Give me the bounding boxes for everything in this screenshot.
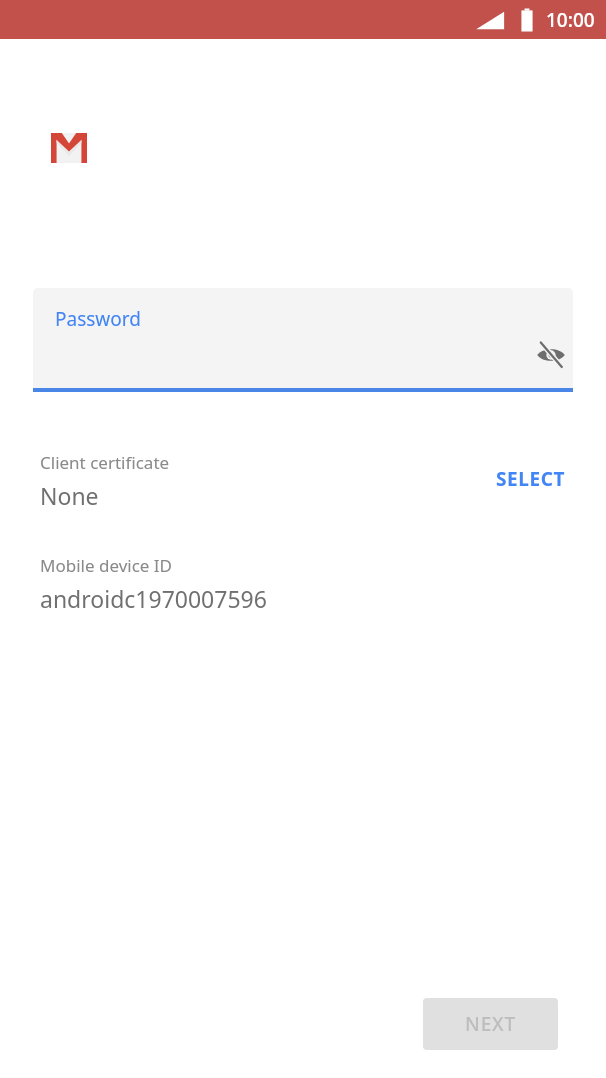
staticText: SELECT xyxy=(496,466,566,492)
staticText: None xyxy=(40,480,99,511)
button[interactable]: Show password xyxy=(529,333,573,377)
staticText: NEXT xyxy=(465,1011,516,1037)
staticText: Client certificate xyxy=(40,451,170,474)
staticText: 10:00 xyxy=(546,7,595,33)
button[interactable]: NEXT xyxy=(423,998,558,1050)
staticText: Password xyxy=(55,306,141,332)
button[interactable]: Password xyxy=(33,288,573,392)
staticText: androidc1970007596 xyxy=(40,583,267,614)
staticText: Mobile device ID xyxy=(40,554,173,577)
button[interactable]: SELECT xyxy=(480,454,582,504)
